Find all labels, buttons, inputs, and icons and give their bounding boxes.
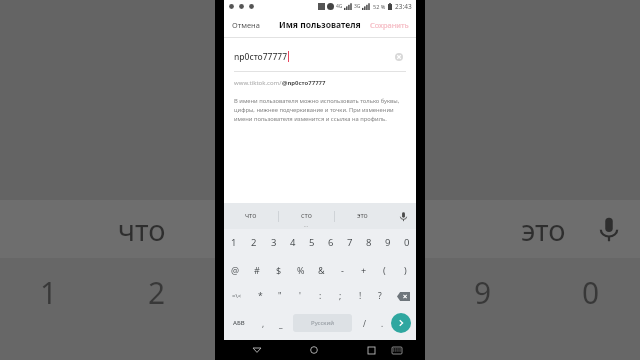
- button[interactable]: %: [290, 256, 311, 283]
- button[interactable]: 1: [224, 229, 244, 256]
- staticText: &: [318, 264, 325, 276]
- staticText: 3: [257, 272, 275, 313]
- button[interactable]: +: [353, 256, 374, 283]
- button[interactable]: это: [335, 203, 390, 229]
- staticText: 5: [309, 236, 315, 249]
- staticText: что: [245, 211, 257, 221]
- staticText: это: [521, 210, 566, 249]
- staticText: 3G: [354, 3, 361, 10]
- button[interactable]: Русский: [293, 314, 352, 332]
- staticText: 9: [474, 272, 492, 313]
- button[interactable]: 6: [321, 229, 340, 256]
- button[interactable]: 8: [359, 229, 378, 256]
- staticText: 0: [404, 236, 410, 249]
- staticText: www.tiktok.com/: [234, 79, 282, 87]
- button[interactable]: /: [355, 309, 373, 337]
- button[interactable]: .: [373, 309, 391, 337]
- staticText: 1: [40, 272, 58, 313]
- staticText: 9: [385, 236, 391, 249]
- button[interactable]: 7: [340, 229, 359, 256]
- staticText: 1: [231, 236, 237, 249]
- button[interactable]: что: [224, 203, 278, 229]
- button[interactable]: 9: [378, 229, 397, 256]
- button[interactable]: Клавиатура: [387, 340, 407, 360]
- button[interactable]: ): [395, 256, 416, 283]
- button[interactable]: АБВ: [224, 309, 254, 337]
- button[interactable]: Голосовой ввод: [390, 203, 416, 229]
- staticText: 2: [148, 272, 166, 313]
- button[interactable]: 0: [397, 229, 416, 256]
- button[interactable]: ;: [330, 283, 350, 309]
- button[interactable]: (: [374, 256, 395, 283]
- staticText: 52 %: [373, 3, 386, 10]
- button[interactable]: ": [270, 283, 290, 309]
- button[interactable]: Сохранить: [363, 16, 416, 34]
- button[interactable]: Назад: [247, 340, 267, 360]
- staticText: 7: [347, 236, 353, 249]
- staticText: ;: [339, 290, 342, 302]
- staticText: -: [341, 264, 344, 276]
- staticText: 0: [582, 272, 600, 313]
- button[interactable]: 4: [283, 229, 302, 256]
- staticText: 2: [251, 236, 257, 249]
- staticText: ): [404, 264, 407, 276]
- button[interactable]: сто: [279, 203, 334, 229]
- button[interactable]: *: [250, 283, 270, 309]
- staticText: ?: [378, 290, 382, 302]
- staticText: *: [258, 290, 263, 302]
- staticText: ': [299, 290, 301, 302]
- staticText: 4: [290, 236, 296, 249]
- button[interactable]: 3: [264, 229, 283, 256]
- staticText: _: [279, 318, 283, 329]
- staticText: что: [118, 210, 166, 249]
- staticText: на профиль.: [265, 0, 376, 20]
- button[interactable]: Очистить: [392, 50, 406, 64]
- staticText: !: [359, 290, 362, 302]
- button[interactable]: :: [310, 283, 330, 309]
- button[interactable]: Удалить: [390, 283, 416, 309]
- staticText: 23:43: [395, 2, 412, 11]
- button[interactable]: ,: [254, 309, 272, 337]
- button[interactable]: 2: [244, 229, 264, 256]
- staticText: Отмена: [232, 20, 260, 30]
- staticText: это: [357, 211, 368, 221]
- staticText: ": [278, 290, 282, 302]
- staticText: @: [231, 264, 240, 276]
- staticText: .: [381, 318, 384, 329]
- button[interactable]: @: [224, 256, 246, 283]
- staticText: Русский: [311, 319, 334, 327]
- button[interactable]: Готово: [391, 313, 411, 333]
- staticText: $: [276, 264, 282, 276]
- button[interactable]: $: [268, 256, 290, 283]
- button[interactable]: _: [272, 309, 290, 337]
- staticText: (: [383, 264, 386, 276]
- button[interactable]: #: [246, 256, 268, 283]
- button[interactable]: 5: [302, 229, 321, 256]
- button[interactable]: -: [332, 256, 353, 283]
- button[interactable]: Главная: [304, 340, 324, 360]
- staticText: 8: [366, 236, 372, 249]
- staticText: ...: [304, 222, 309, 229]
- staticText: Имя пользователя: [279, 19, 361, 31]
- staticText: @np0cто77777: [282, 79, 326, 87]
- staticText: 4G: [336, 3, 343, 10]
- staticText: АБВ: [233, 319, 245, 327]
- staticText: =\<: [232, 292, 242, 300]
- staticText: сто: [301, 211, 312, 221]
- staticText: +: [361, 264, 367, 276]
- staticText: np0cто77777: [234, 51, 288, 63]
- button[interactable]: =\<: [224, 283, 250, 309]
- button[interactable]: ?: [370, 283, 390, 309]
- staticText: В имени пользователя можно использовать …: [234, 97, 406, 123]
- button[interactable]: !: [350, 283, 370, 309]
- button[interactable]: Отмена: [224, 16, 268, 34]
- staticText: #: [254, 264, 260, 276]
- staticText: ,: [262, 318, 265, 329]
- staticText: Сохранить: [370, 20, 409, 30]
- button[interactable]: &: [311, 256, 332, 283]
- button[interactable]: Недавние: [361, 340, 381, 360]
- staticText: %: [297, 264, 305, 276]
- staticText: :: [319, 290, 322, 302]
- staticText: 6: [328, 236, 334, 249]
- button[interactable]: ': [290, 283, 310, 309]
